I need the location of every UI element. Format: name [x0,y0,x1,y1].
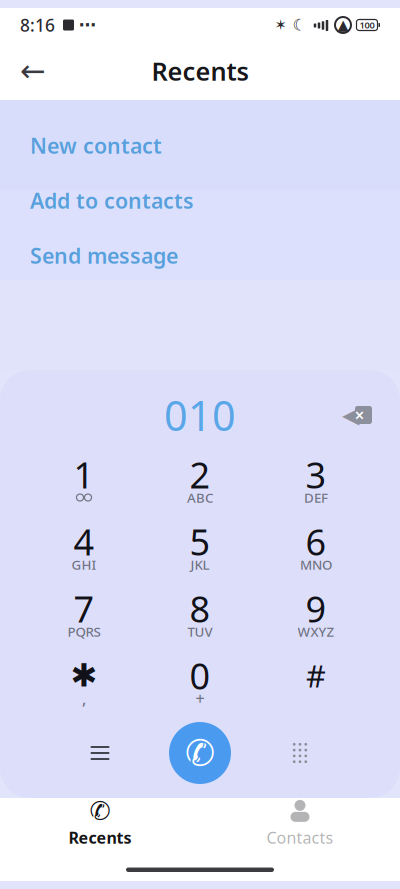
staticText: ▲ [337,17,348,33]
button[interactable]: 4 [29,515,139,582]
staticText: GHI [71,556,96,573]
staticText: 010 [164,388,236,442]
staticText: 8 [189,585,210,632]
button[interactable]: 6 [261,515,371,582]
staticText: DEF [304,489,328,506]
staticText: + [195,688,204,709]
button[interactable]: Hide keypad [250,723,350,783]
staticText: Send message [30,241,178,270]
staticText: JKL [190,556,209,573]
button[interactable]: New contact [0,118,400,173]
staticText: 100 [359,19,374,31]
button[interactable]: Delete [329,393,385,437]
staticText: 6 [305,518,326,565]
staticText: 0 [189,652,210,699]
button[interactable]: Add to contacts [0,173,400,228]
button[interactable]: 0 [145,649,255,716]
staticText: ☾ [292,16,306,34]
button[interactable]: 2 [145,448,255,515]
staticText: ◀ [342,402,359,428]
staticText: 3 [305,451,326,498]
button[interactable]: ✱ [29,649,139,716]
staticText: × [354,403,364,426]
staticText: 7 [73,585,94,632]
button[interactable]: More options [50,723,150,783]
staticText: ✆ [185,733,215,773]
staticText: TUV [187,623,212,640]
button[interactable]: Send message [0,228,400,283]
staticText: ✱ [70,657,97,694]
button[interactable]: 3 [261,448,371,515]
button[interactable]: 7 [29,582,139,649]
staticText: , [82,688,86,709]
staticText: PQRS [67,623,100,640]
staticText: 1 [73,451,94,498]
staticText: 5 [189,518,210,565]
staticText: Recents [151,54,248,88]
staticText: 9 [305,585,326,632]
staticText: # [306,655,326,696]
button[interactable]: 1 [29,448,139,515]
staticText: 8:16 [20,13,55,36]
staticText: MNO [300,556,332,573]
staticText: ✶ [274,17,286,33]
staticText: New contact [30,131,162,160]
button[interactable]: ✆ [0,798,200,850]
staticText: ← [20,54,46,88]
button[interactable]: Back [11,49,55,93]
staticText: ✆ [89,796,110,825]
staticText: 4 [73,518,94,565]
staticText: Contacts [266,827,333,848]
button[interactable]: 9 [261,582,371,649]
staticText: WXYZ [297,623,334,640]
button[interactable]: 8 [145,582,255,649]
staticText: ABC [187,489,213,506]
staticText: Recents [68,827,131,848]
button[interactable]: # [261,649,371,716]
staticText: 2 [189,451,210,498]
staticText: Add to contacts [30,186,194,215]
staticText: ⋯ [79,15,96,35]
button[interactable]: 5 [145,515,255,582]
button[interactable]: Call [150,718,250,788]
button[interactable]: Contacts [200,798,400,850]
